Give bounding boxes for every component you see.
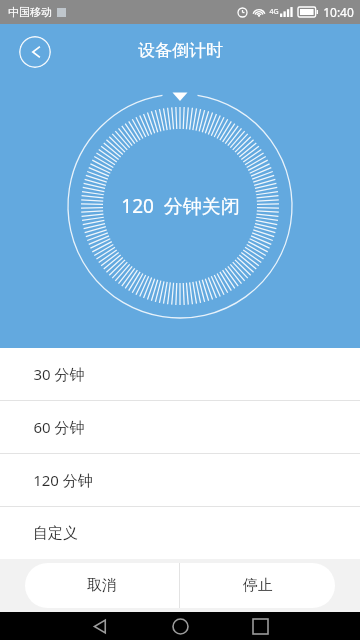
staticText: 60 分钟 [33,417,85,437]
staticText: 4G [269,7,279,17]
button[interactable]: Recents [253,619,268,634]
button[interactable]: 取消 [25,563,179,608]
staticText: 自定义 [33,524,78,543]
button[interactable]: Back [19,36,51,68]
staticText: 120 分钟关闭 [121,193,240,219]
staticText: 取消 [87,576,117,595]
button[interactable]: Home [172,618,189,635]
staticText: 设备倒计时 [138,40,223,61]
button[interactable]: 停止 [180,563,335,608]
staticText: 10:40 [323,4,354,20]
staticText: 停止 [243,576,273,595]
staticText: 30 分钟 [33,364,85,384]
button[interactable]: 自定义 [0,507,360,559]
button[interactable]: Back [92,618,109,635]
staticText: 120 分钟 [33,470,93,490]
button[interactable]: 30 分钟 [0,348,360,400]
button[interactable]: 60 分钟 [0,401,360,453]
staticText: 中国移动 [8,5,52,19]
button[interactable]: 120 分钟 [0,454,360,506]
